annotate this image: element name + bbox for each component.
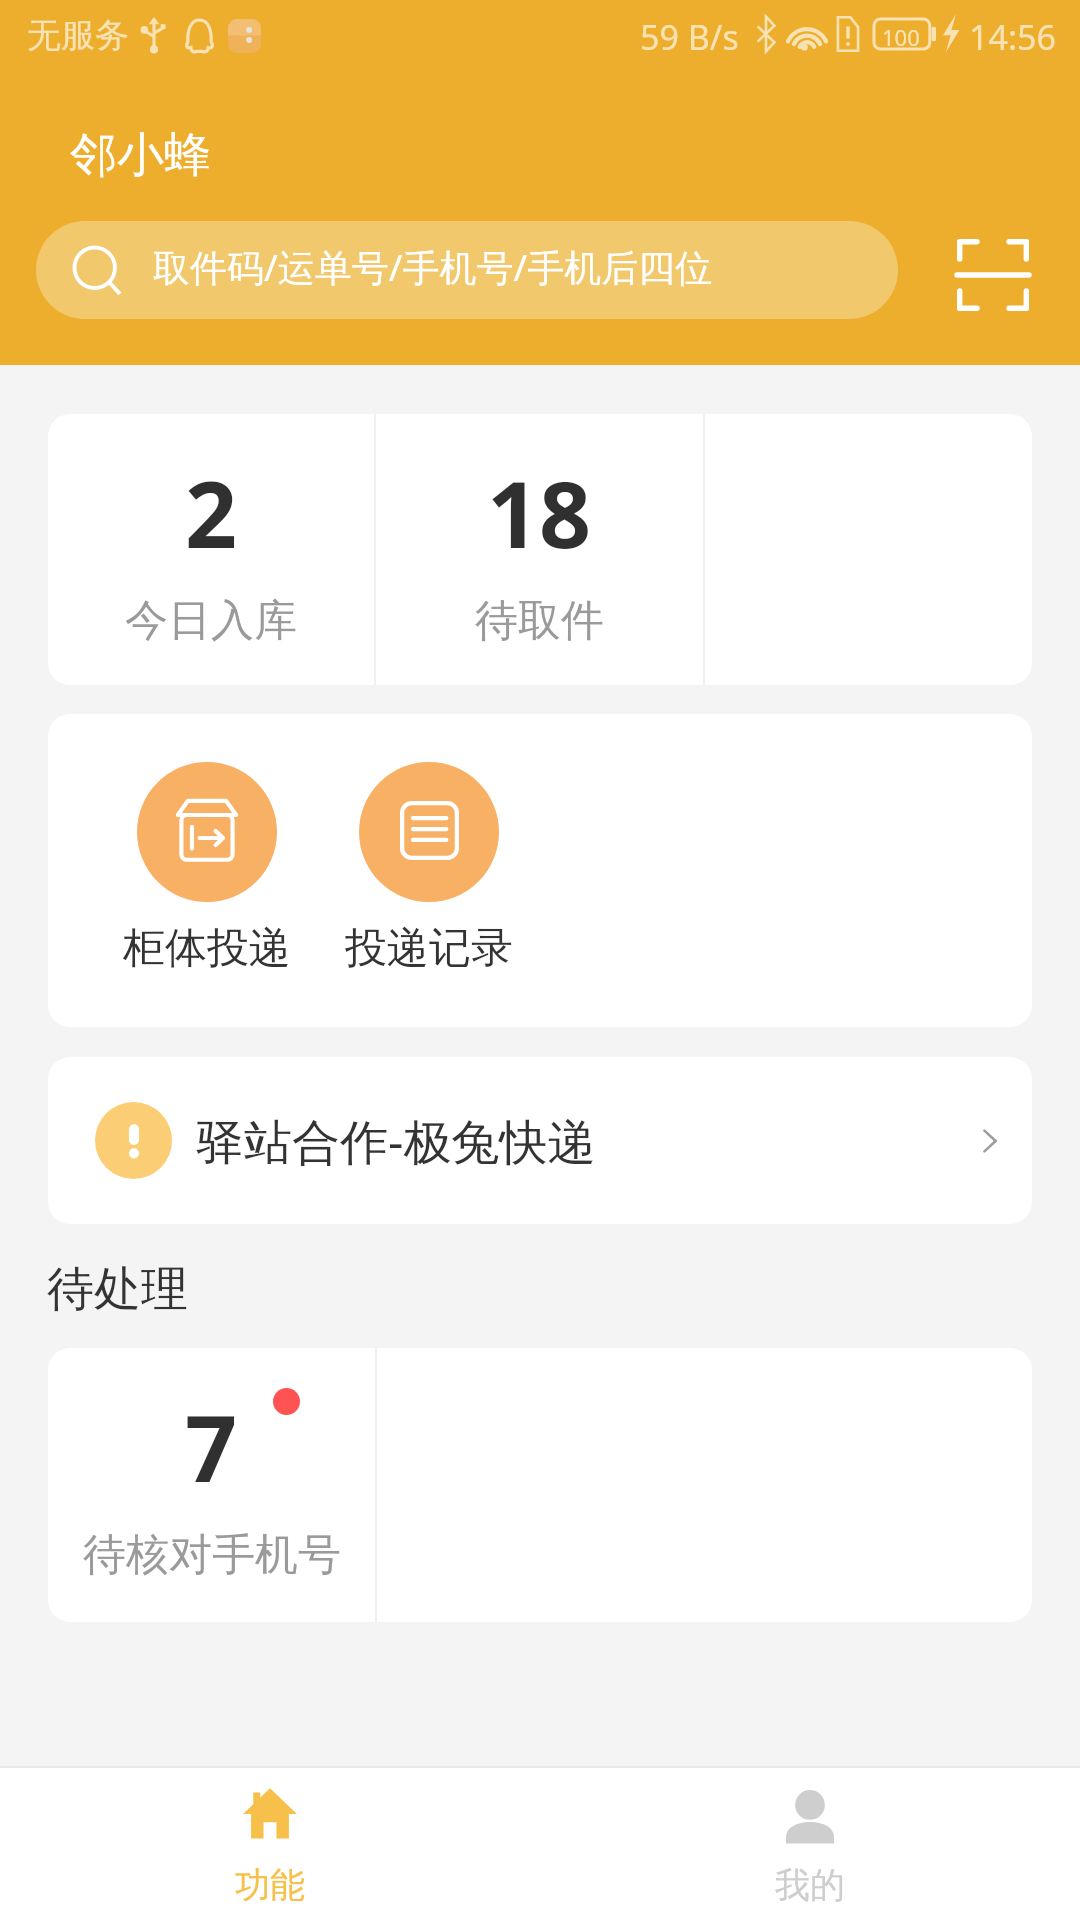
staticText: 我的 bbox=[775, 1863, 845, 1907]
staticText: 柜体投递 bbox=[123, 922, 291, 975]
staticText: 100 bbox=[882, 22, 920, 52]
staticText: 7 bbox=[185, 1385, 238, 1509]
staticText: 18 bbox=[487, 451, 592, 575]
button[interactable]: 功能 bbox=[0, 1768, 540, 1920]
staticText: 今日入库 bbox=[125, 594, 297, 648]
staticText: 功能 bbox=[235, 1863, 305, 1907]
button[interactable]: 驿站合作-极兔快递 bbox=[48, 1057, 1032, 1224]
staticText: 无服务 bbox=[27, 14, 129, 57]
button[interactable]: 2 bbox=[48, 414, 374, 685]
button[interactable]: 18 bbox=[376, 414, 703, 685]
staticText: 驿站合作-极兔快递 bbox=[196, 1108, 596, 1174]
staticText: 取件码/运单号/手机号/手机后四位 bbox=[153, 241, 713, 292]
staticText: 14:56 bbox=[969, 14, 1056, 60]
staticText: 待取件 bbox=[475, 594, 604, 648]
button[interactable]: 取件码/运单号/手机号/手机后四位 bbox=[36, 221, 898, 319]
staticText: 待核对手机号 bbox=[83, 1528, 341, 1582]
staticText: 投递记录 bbox=[345, 922, 513, 975]
staticText: 邻小蜂 bbox=[70, 126, 211, 185]
button[interactable]: 扫一扫 bbox=[943, 225, 1043, 325]
staticText: 2 bbox=[185, 451, 238, 575]
staticText: 待处理 bbox=[47, 1260, 188, 1319]
button[interactable]: 柜体投递 bbox=[123, 762, 291, 975]
button[interactable]: 我的 bbox=[540, 1768, 1080, 1920]
staticText: 59 B/s bbox=[640, 14, 739, 60]
button[interactable]: 7 bbox=[48, 1348, 375, 1622]
button[interactable]: 投递记录 bbox=[345, 762, 513, 975]
